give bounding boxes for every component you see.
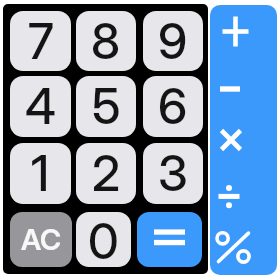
button[interactable]: 6 xyxy=(143,76,203,137)
button[interactable]: 8 xyxy=(76,11,136,71)
button[interactable]: 7 xyxy=(10,11,71,71)
staticText: 9 xyxy=(158,12,188,71)
staticText: 3 xyxy=(158,144,188,203)
button[interactable]: 2 xyxy=(76,143,136,204)
button[interactable] xyxy=(216,230,250,264)
button[interactable]: 0 xyxy=(76,212,131,267)
button[interactable]: 5 xyxy=(76,76,136,137)
staticText: 8 xyxy=(91,12,121,71)
staticText: AC xyxy=(21,222,62,257)
button[interactable]: 3 xyxy=(143,143,203,204)
staticText: 2 xyxy=(92,144,121,203)
button[interactable] xyxy=(137,212,202,267)
staticText: 7 xyxy=(28,12,54,71)
staticText: 0 xyxy=(88,212,119,267)
button[interactable] xyxy=(216,77,244,101)
staticText: 4 xyxy=(25,77,56,136)
staticText: 6 xyxy=(158,77,188,136)
button[interactable] xyxy=(219,15,252,48)
staticText: 1 xyxy=(31,144,50,203)
button[interactable] xyxy=(217,126,245,154)
button[interactable]: 4 xyxy=(10,76,71,137)
staticText: 5 xyxy=(92,77,121,136)
button[interactable] xyxy=(215,182,243,210)
button[interactable]: 1 xyxy=(10,143,71,204)
button[interactable]: AC xyxy=(10,212,72,267)
button[interactable]: 9 xyxy=(143,11,203,71)
